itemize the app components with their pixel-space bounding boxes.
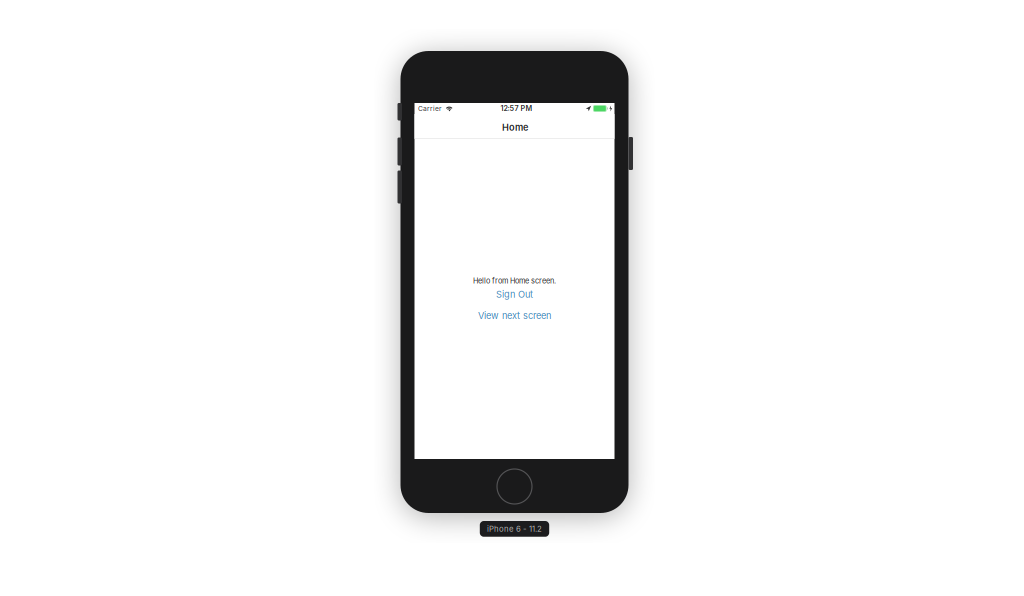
button[interactable]: Home [497, 469, 532, 504]
staticText: Home [502, 122, 528, 133]
button[interactable]: Sign Out [496, 289, 533, 300]
staticText: Hello from Home screen. [473, 276, 556, 285]
staticText: Sign Out [496, 289, 533, 300]
staticText: iPhone 6 - 11.2 [487, 524, 542, 534]
button[interactable]: iPhone 6 - 11.2 [480, 521, 549, 537]
staticText: View next screen [478, 310, 551, 321]
button[interactable]: View next screen [478, 310, 551, 321]
staticText: Carrier [418, 104, 442, 113]
staticText: 12:57 PM [500, 104, 532, 113]
